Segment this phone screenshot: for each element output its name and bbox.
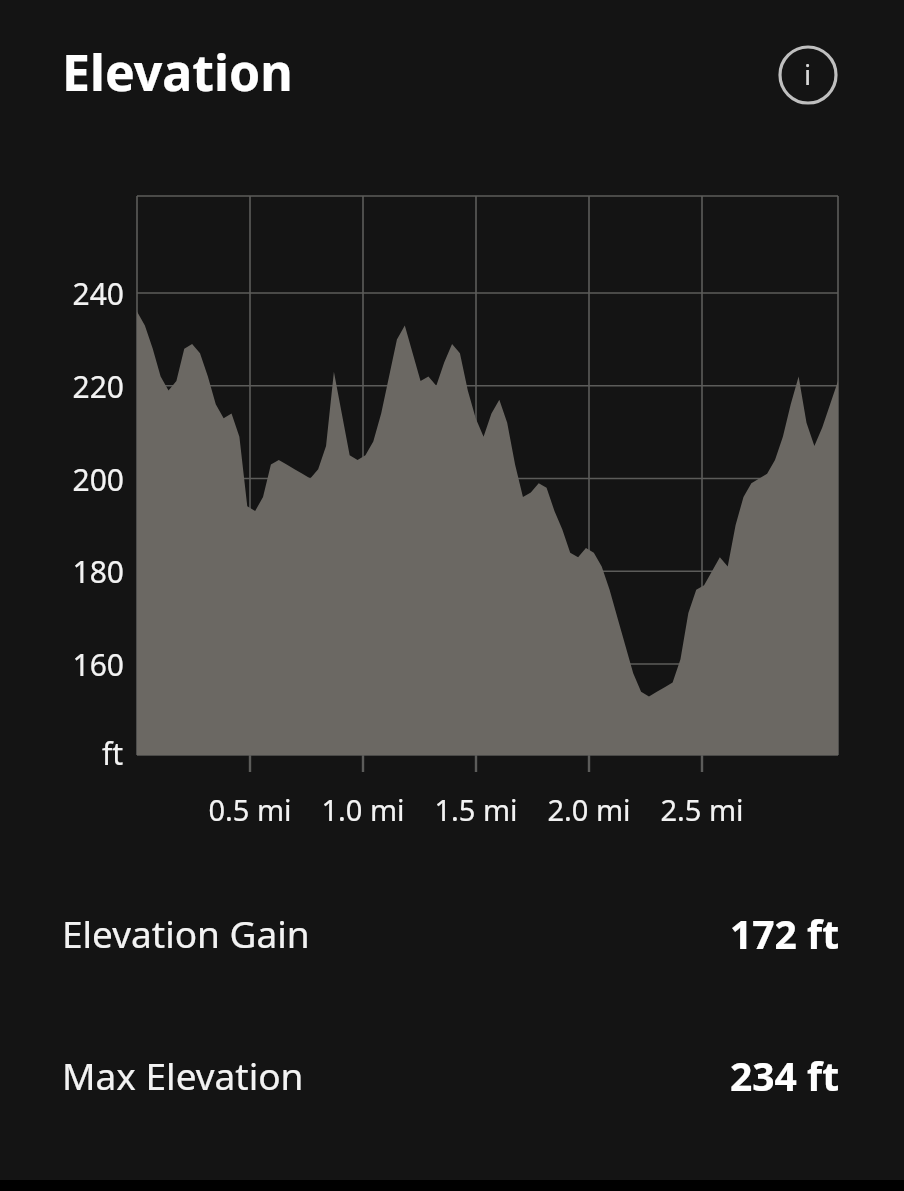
staticText: i xyxy=(804,55,812,93)
staticText: 0.5 mi xyxy=(208,790,292,829)
staticText: 180 xyxy=(72,551,124,591)
staticText: 2.5 mi xyxy=(660,790,744,829)
staticText: 2.0 mi xyxy=(547,790,631,829)
staticText: 1.5 mi xyxy=(434,790,518,829)
staticText: 234 ft xyxy=(730,1049,840,1102)
staticText: Elevation Gain xyxy=(62,908,310,958)
staticText: 172 ft xyxy=(730,907,840,960)
staticText: 220 xyxy=(72,366,124,406)
staticText: 1.0 mi xyxy=(321,790,405,829)
staticText: 160 xyxy=(72,644,124,684)
button[interactable]: Max Elevation xyxy=(0,1047,904,1103)
staticText: ft xyxy=(102,733,124,773)
staticText: 240 xyxy=(72,273,124,313)
staticText: Max Elevation xyxy=(62,1050,304,1100)
staticText: Elevation xyxy=(62,38,293,106)
button[interactable]: Elevation Gain xyxy=(0,905,904,961)
staticText: 200 xyxy=(72,459,124,499)
button[interactable]: Information about elevation xyxy=(778,45,838,105)
